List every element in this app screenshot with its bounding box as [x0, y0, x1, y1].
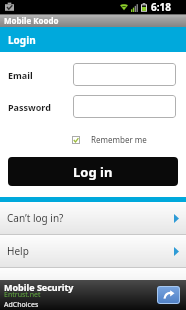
button[interactable]: Remember me — [72, 134, 147, 145]
staticText: 6:18 — [151, 0, 171, 14]
button[interactable]: Help — [0, 235, 186, 267]
staticText: Login — [8, 33, 36, 47]
button[interactable]: Log in — [8, 157, 178, 186]
button[interactable]: Community Support — [0, 268, 186, 300]
staticText: Help — [7, 244, 29, 258]
staticText: Entrust.net — [4, 290, 41, 300]
button[interactable]: Share — [157, 286, 180, 304]
staticText: Mobile Security — [4, 281, 74, 293]
staticText: Remember me — [91, 134, 147, 145]
staticText: Email — [8, 69, 33, 81]
staticText: Community Support — [7, 277, 103, 291]
button[interactable] — [73, 63, 176, 86]
staticText: Can’t log in? — [7, 211, 64, 225]
staticText: Log in — [73, 163, 113, 181]
button[interactable]: Mobile Security — [0, 280, 186, 310]
button[interactable] — [73, 95, 176, 118]
staticText: AdChoices — [4, 300, 39, 310]
button[interactable]: Can’t log in? — [0, 202, 186, 234]
staticText: Password — [8, 101, 51, 113]
staticText: Mobile Koodo — [4, 15, 59, 26]
